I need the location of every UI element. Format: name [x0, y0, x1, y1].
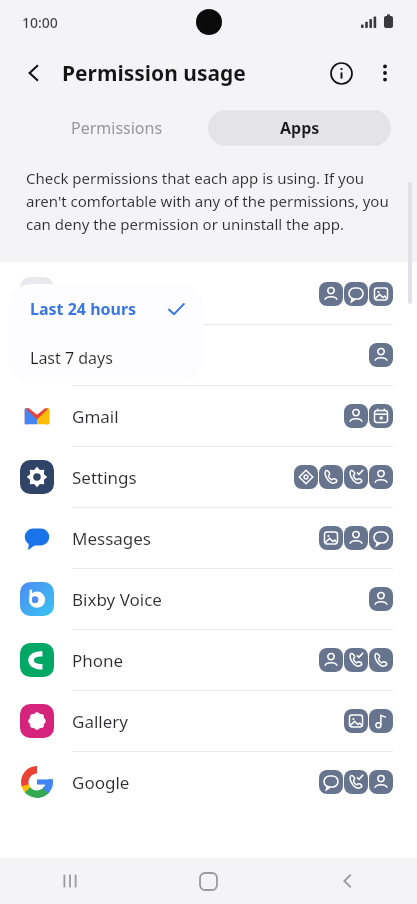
button[interactable]: More options — [363, 51, 407, 95]
button[interactable]: Settings — [0, 447, 417, 507]
staticText: Settings — [72, 466, 137, 489]
button[interactable]: Gmail — [0, 386, 417, 446]
button[interactable]: Last 24 hours — [8, 284, 204, 333]
staticText: Permission usage — [62, 59, 246, 88]
button[interactable]: Bixby Voice — [0, 569, 417, 629]
staticText: Permissions — [71, 117, 163, 139]
staticText: Contacts — [72, 344, 142, 367]
staticText: 10:00 — [22, 13, 58, 32]
staticText: Google — [72, 771, 130, 794]
button[interactable]: Contacts — [0, 325, 417, 385]
button[interactable]: Messages — [0, 508, 417, 568]
button[interactable]: Recents — [0, 858, 139, 904]
staticText: Bixby Voice — [72, 588, 162, 611]
staticText: Messages — [72, 527, 152, 550]
staticText: Gallery — [72, 710, 128, 733]
button[interactable]: Information — [319, 51, 363, 95]
button[interactable]: Phone — [0, 630, 417, 690]
button[interactable]: Apps — [208, 110, 391, 146]
staticText: Check permissions that each app is using… — [26, 168, 391, 234]
staticText: Last 24 hours — [30, 298, 137, 320]
staticText: Last 7 days — [30, 347, 113, 369]
button[interactable]: Google — [0, 752, 417, 812]
button[interactable]: Last 7 days — [8, 333, 204, 382]
staticText: Gmail — [72, 405, 119, 428]
button[interactable]: Back — [278, 858, 417, 904]
button[interactable]: Gallery — [0, 691, 417, 751]
staticText: Apps — [280, 117, 320, 139]
button[interactable]: Home — [139, 858, 278, 904]
button[interactable] — [0, 264, 417, 324]
button[interactable]: Permissions — [26, 110, 208, 146]
button[interactable]: Back — [12, 51, 56, 95]
staticText: Phone — [72, 649, 124, 672]
